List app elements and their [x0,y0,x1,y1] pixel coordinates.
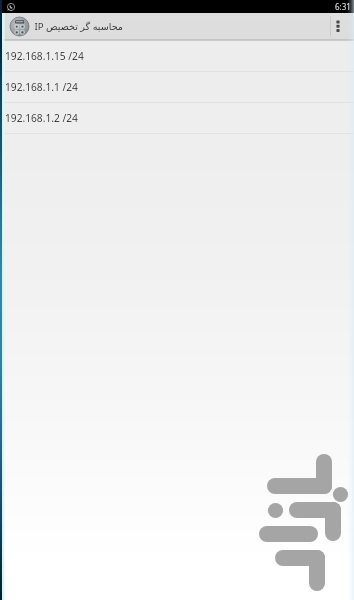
button[interactable]: 192.168.1.1 /24 [0,72,354,102]
staticText: 192.168.1.15 /24 [5,49,84,63]
button[interactable]: 192.168.1.2 /24 [0,103,354,133]
staticText: 192.168.1.2 /24 [5,111,78,125]
staticText: محاسبه گر تخصیص IP [34,20,123,33]
staticText: 192.168.1.1 /24 [5,80,78,94]
staticText: 6:31 [335,1,351,12]
button[interactable]: 192.168.1.15 /24 [0,41,354,71]
button[interactable]: More options [331,13,345,39]
